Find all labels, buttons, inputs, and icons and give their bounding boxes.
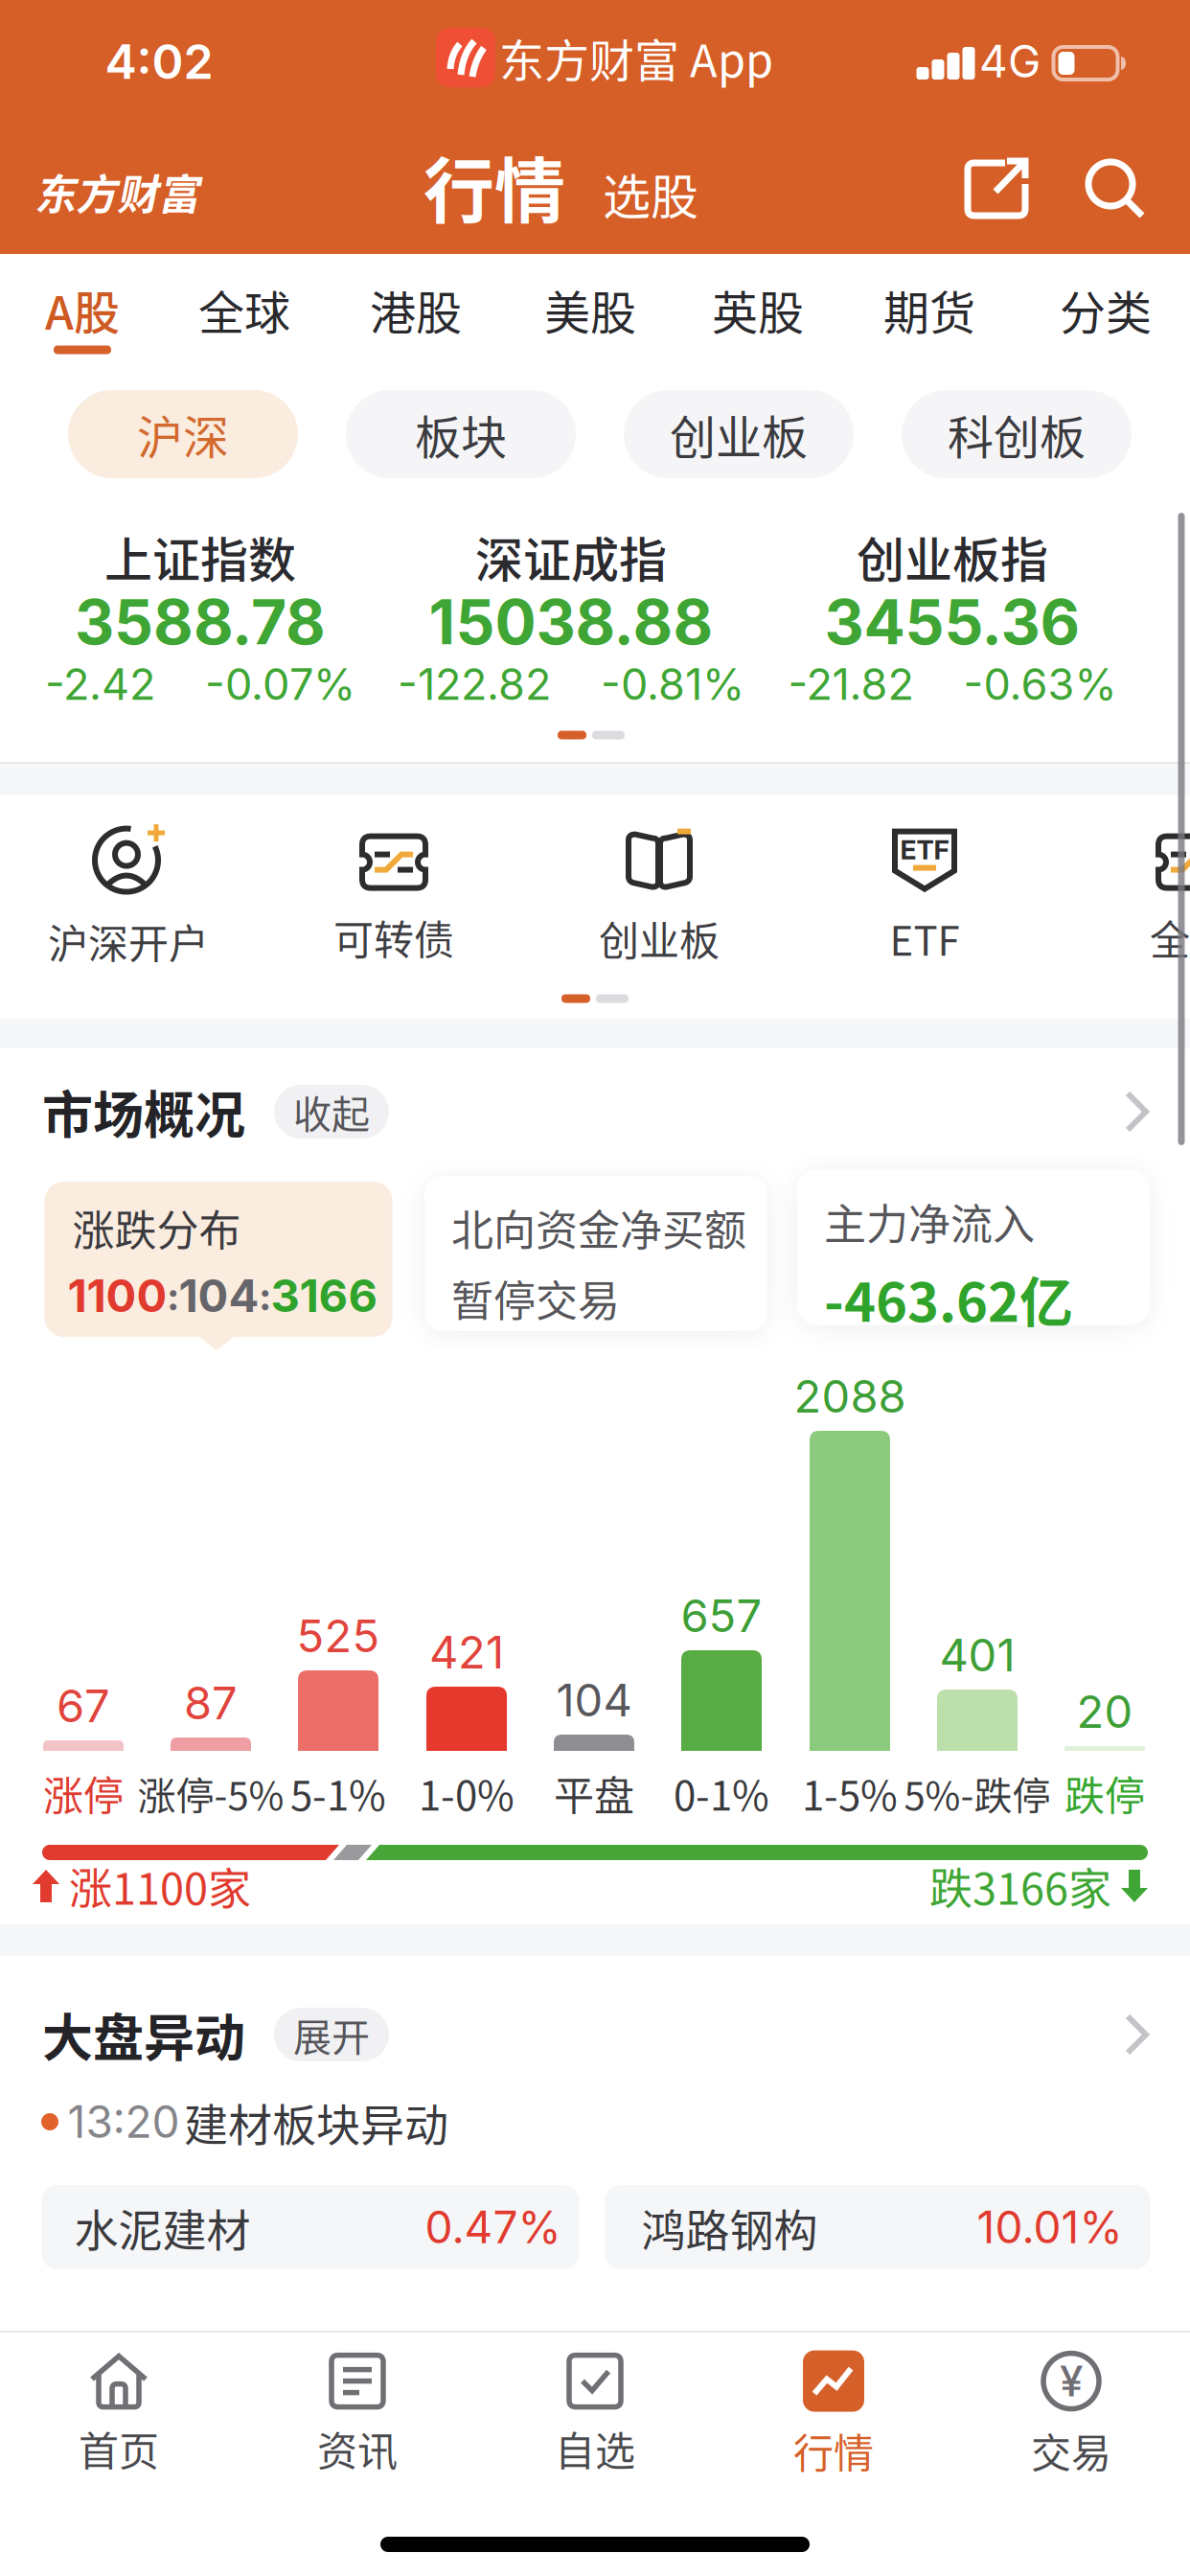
staticText: 创业板	[670, 401, 808, 467]
button[interactable]: 选股	[603, 159, 698, 228]
button[interactable]: 首页	[79, 2352, 159, 2478]
staticText: 深证成指	[475, 522, 667, 591]
staticText: 0.47%	[425, 2201, 561, 2254]
button[interactable]: 全球	[198, 276, 290, 343]
staticText: 104	[179, 1268, 259, 1323]
staticText: -122.82	[398, 658, 551, 710]
button[interactable]: ETF	[890, 825, 960, 967]
staticText: 交易	[1031, 2421, 1111, 2480]
staticText: 0-1%	[674, 1764, 769, 1822]
button[interactable]: 行情	[793, 2350, 874, 2480]
staticText: 104	[556, 1673, 632, 1727]
staticText: 首页	[79, 2419, 159, 2478]
staticText: 美股	[544, 276, 636, 343]
staticText: 沪深	[137, 401, 229, 467]
staticText: 北向资金净买额	[451, 1197, 746, 1258]
staticText: 鸿路钢构	[641, 2195, 818, 2259]
staticText: 东方财富 App	[499, 25, 773, 90]
staticText: 选股	[603, 159, 698, 228]
button[interactable]: 水泥建材	[42, 2185, 579, 2269]
staticText: 涨停-5%	[137, 1765, 284, 1821]
staticText: -2.42	[45, 658, 155, 710]
staticText: 657	[681, 1589, 762, 1643]
staticText: 跌停	[1064, 1764, 1145, 1822]
button[interactable]: 美股	[544, 276, 636, 343]
button[interactable]: 沪深开户	[48, 822, 209, 970]
staticText: :	[260, 1271, 270, 1320]
button[interactable]: 港股	[370, 276, 462, 343]
staticText: 67	[57, 1679, 110, 1733]
staticText: 13:20	[68, 2095, 180, 2148]
staticText: -0.63%	[963, 658, 1117, 710]
staticText: 全球	[198, 276, 290, 343]
staticText: 5%-跌停	[904, 1765, 1051, 1821]
button[interactable]: 涨跌分布	[45, 1182, 392, 1337]
staticText: -0.07%	[205, 658, 355, 710]
button[interactable]: 展开	[274, 2008, 389, 2061]
staticText: 525	[297, 1609, 380, 1663]
staticText: 行情	[423, 135, 565, 237]
button[interactable]: 创业板	[624, 390, 854, 478]
staticText: 3166	[271, 1268, 378, 1323]
staticText: 涨停	[43, 1764, 124, 1822]
staticText: 5-1%	[290, 1764, 386, 1822]
staticText: 创业板	[599, 909, 720, 967]
button[interactable]: 自选	[555, 2352, 635, 2478]
staticText: 15038.88	[429, 585, 713, 659]
button[interactable]: 深证成指	[389, 500, 753, 740]
staticText: -21.82	[788, 658, 914, 710]
staticText: 市场概况	[42, 1075, 245, 1148]
staticText: :	[168, 1271, 178, 1320]
staticText: 平盘	[554, 1764, 634, 1822]
button[interactable]: 可转债	[333, 826, 454, 966]
staticText: 3455.36	[824, 585, 1080, 659]
staticText: 大盘异动	[42, 1998, 245, 2071]
staticText: 1100	[68, 1268, 167, 1323]
staticText: 创业板指	[857, 522, 1048, 591]
staticText: 东方财富	[34, 162, 199, 222]
staticText: 4:02	[105, 32, 213, 90]
staticText: 自选	[555, 2419, 635, 2478]
button[interactable]: 更多	[1123, 2012, 1152, 2057]
staticText: 英股	[712, 276, 804, 343]
button[interactable]: 板块	[346, 390, 576, 478]
staticText: 1-0%	[419, 1764, 515, 1822]
staticText: 跌3166家	[929, 1855, 1111, 1917]
button[interactable]: 期货	[883, 276, 975, 343]
button[interactable]: 搜索	[1085, 158, 1146, 219]
button[interactable]: 资讯	[317, 2352, 398, 2478]
staticText: 上证指数	[104, 522, 296, 591]
button[interactable]: A股	[45, 276, 120, 343]
staticText: 收起	[293, 1084, 370, 1139]
staticText: ETF	[890, 909, 960, 967]
button[interactable]: 更多	[1123, 1090, 1152, 1134]
staticText: A股	[45, 276, 120, 343]
staticText: 期货	[883, 276, 975, 343]
staticText: 10.01%	[977, 2201, 1122, 2254]
staticText: -463.62亿	[824, 1260, 1073, 1337]
staticText: 资讯	[317, 2419, 398, 2478]
button[interactable]: 收起	[274, 1085, 389, 1138]
staticText: 分类	[1060, 276, 1152, 343]
button[interactable]: 创业板指	[770, 500, 1134, 740]
button[interactable]: 英股	[712, 276, 804, 343]
staticText: 港股	[370, 276, 462, 343]
button[interactable]: 科创板	[902, 390, 1132, 478]
button[interactable]: 鸿路钢构	[605, 2185, 1150, 2269]
staticText: 涨1100家	[69, 1855, 251, 1917]
staticText: 可转债	[333, 908, 454, 966]
button[interactable]: 北向资金净买额	[424, 1176, 767, 1331]
button[interactable]: 主力净流入	[797, 1176, 1150, 1331]
staticText: 20	[1076, 1684, 1133, 1739]
button[interactable]: 分享	[965, 159, 1028, 218]
button[interactable]: 上证指数	[18, 500, 382, 740]
staticText: 建材板块异动	[184, 2090, 448, 2154]
button[interactable]: 沪深	[68, 390, 298, 478]
button[interactable]: 创业板	[599, 825, 720, 967]
button[interactable]: ¥	[1031, 2350, 1111, 2480]
button[interactable]: 全球	[1150, 826, 1190, 966]
staticText: 87	[184, 1676, 238, 1730]
staticText: 行情	[793, 2421, 874, 2480]
button[interactable]: 分类	[1060, 276, 1152, 343]
staticText: ¥	[1060, 2356, 1083, 2407]
